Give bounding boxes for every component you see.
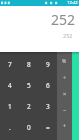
- staticText: 6: [46, 81, 50, 90]
- button[interactable]: −: [57, 101, 72, 117]
- staticText: 5: [27, 81, 31, 90]
- staticText: 2: [27, 102, 31, 111]
- button[interactable]: 3: [38, 96, 57, 117]
- button[interactable]: 4: [0, 75, 19, 96]
- staticText: ÷: [63, 74, 67, 81]
- staticText: 12:42: [67, 0, 78, 6]
- button[interactable]: =: [38, 117, 57, 138]
- staticText: .: [9, 123, 11, 132]
- button[interactable]: 8: [19, 54, 38, 75]
- button[interactable]: 6: [38, 75, 57, 96]
- staticText: 8: [27, 60, 31, 69]
- staticText: +: [63, 122, 67, 129]
- button[interactable]: 1: [0, 96, 19, 117]
- staticText: 7: [8, 60, 12, 69]
- button[interactable]: %: [57, 53, 72, 69]
- staticText: 252: [51, 10, 76, 29]
- staticText: −: [63, 106, 67, 113]
- button[interactable]: ×: [57, 85, 72, 101]
- staticText: 1: [8, 102, 12, 111]
- staticText: %: [62, 58, 67, 65]
- button[interactable]: 0: [19, 117, 38, 138]
- staticText: =: [46, 123, 50, 132]
- staticText: ×: [63, 90, 67, 97]
- button[interactable]: ÷: [57, 69, 72, 85]
- staticText: 4: [8, 81, 12, 90]
- button[interactable]: 5: [19, 75, 38, 96]
- button[interactable]: .: [0, 117, 19, 138]
- button[interactable]: Equals: [72, 52, 79, 140]
- button[interactable]: 2: [19, 96, 38, 117]
- button[interactable]: 7: [0, 54, 19, 75]
- button[interactable]: +: [57, 117, 72, 133]
- staticText: 9: [46, 60, 50, 69]
- staticText: 0: [27, 123, 31, 132]
- staticText: 3: [46, 102, 50, 111]
- staticText: 252: [63, 32, 73, 39]
- button[interactable]: 9: [38, 54, 57, 75]
